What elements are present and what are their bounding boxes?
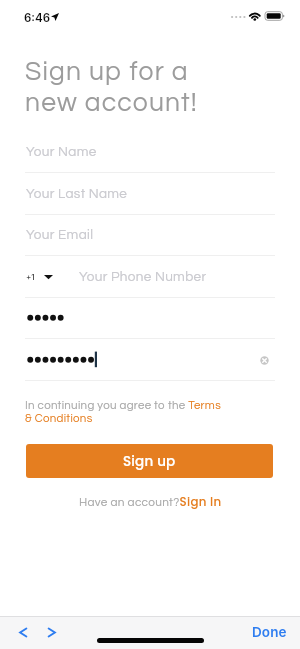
staticText: Sign up [123, 452, 176, 471]
button[interactable]: Have an account?Sign In [75, 492, 226, 513]
button[interactable]: In continuing you agree to the Terms & C… [25, 400, 255, 425]
staticText: Your Phone Number [79, 270, 207, 284]
button[interactable]: Your Name [25, 131, 275, 172]
staticText: Your Email [26, 228, 94, 242]
staticText: Your Last Name [26, 187, 128, 201]
button[interactable]: Clear text [25, 339, 275, 380]
button[interactable]: Sign up [26, 444, 273, 478]
staticText: In continuing you agree to the Terms & C… [25, 400, 221, 425]
staticText: Sign up for a new account! [25, 58, 198, 116]
button[interactable]: +1 [25, 256, 83, 297]
button[interactable]: Clear text [256, 352, 272, 368]
button[interactable]: Done [244, 620, 295, 644]
button[interactable]: Next field [38, 621, 66, 643]
staticText: Your Name [26, 145, 97, 159]
button[interactable]: Your Email [25, 214, 275, 255]
button[interactable]: Your Last Name [25, 173, 275, 214]
staticText: Have an account?Sign In [79, 494, 222, 511]
staticText: +1 [26, 272, 35, 282]
staticText: Done [252, 624, 287, 640]
button[interactable]: Previous field [9, 621, 37, 643]
staticText: 6:46 [24, 11, 51, 25]
button[interactable] [25, 297, 275, 338]
